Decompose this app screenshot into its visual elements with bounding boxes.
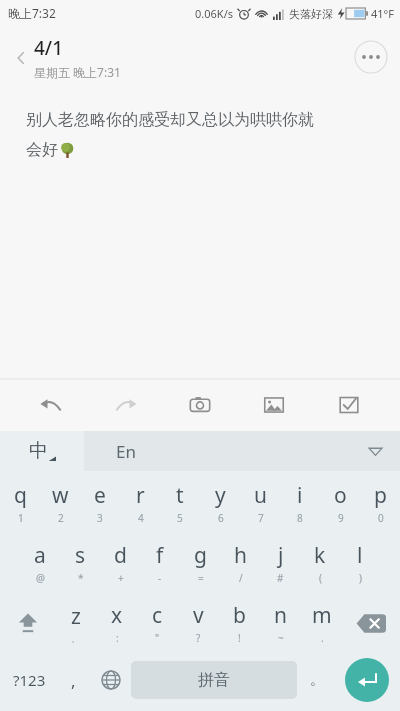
staticText: b [233,601,246,630]
staticText: 会好 [26,140,58,160]
button[interactable]: u [240,477,280,529]
button[interactable]: b [219,597,260,649]
staticText: 4 [138,511,144,525]
staticText: w [52,481,69,510]
staticText: i [297,481,303,510]
staticText: a [34,541,46,570]
staticText: c [152,601,163,630]
button[interactable]: d [100,537,140,589]
button[interactable]: Back [8,45,34,71]
button[interactable]: , [55,655,91,705]
staticText: z [71,602,81,631]
button[interactable]: o [320,477,360,529]
staticText: ) [359,571,362,585]
staticText: t [176,481,184,510]
staticText: / [239,571,243,585]
button[interactable]: Change keyboard language [91,655,131,705]
button[interactable]: x [96,597,137,649]
staticText: e [94,481,106,510]
button[interactable]: t [160,477,200,529]
staticText: 5 [177,511,183,525]
staticText: g [194,541,207,570]
staticText: @ [36,571,45,585]
staticText: 。 [310,671,324,689]
staticText: : [116,631,119,645]
staticText: 2 [58,511,64,525]
staticText: ?123 [13,670,46,690]
staticText: # [277,571,284,585]
button[interactable]: En [84,431,400,471]
button[interactable]: h [220,537,260,589]
staticText: ( [319,571,322,585]
staticText: - [158,571,162,585]
button[interactable]: n [260,597,301,649]
button[interactable]: 拼音 [131,661,297,699]
staticText: r [136,481,145,510]
staticText: 别人老忽略你的感受却又总以为哄哄你就 [26,110,314,130]
staticText: f [156,541,164,570]
staticText: 4/1 [34,35,64,61]
button[interactable]: v [178,597,219,649]
staticText: = [198,571,204,585]
staticText: + [118,571,124,585]
staticText: h [234,541,247,570]
button[interactable]: g [180,537,220,589]
button[interactable]: w [40,477,80,529]
staticText: . [321,631,324,645]
staticText: 、 [71,632,81,645]
staticText: 6 [218,511,224,525]
staticText: * [78,571,84,585]
staticText: u [254,481,267,510]
button[interactable]: a [20,537,60,589]
button[interactable]: Camera [177,382,223,428]
staticText: n [274,601,287,630]
staticText: 星期五 晚上7:31 [34,64,121,80]
staticText: 0.06K/s [195,6,233,21]
staticText: ? [196,631,201,645]
button[interactable]: q [0,477,40,529]
staticText: o [334,481,347,510]
staticText: m [312,601,332,630]
button[interactable]: Checklist [326,382,372,428]
button[interactable]: 。 [297,655,337,705]
button[interactable]: 别人老忽略你的感受却又总以为哄哄你就 [0,88,400,379]
button[interactable]: s [60,537,100,589]
button[interactable]: Enter [337,655,396,705]
staticText: 1 [18,511,24,525]
button[interactable]: m [301,597,342,649]
button[interactable]: Switch input language [0,431,84,471]
staticText: ~ [278,631,284,645]
staticText: d [114,541,127,570]
staticText: s [75,541,86,570]
button[interactable]: i [280,477,320,529]
staticText: 中 [29,439,48,463]
button[interactable]: Backspace [342,597,400,649]
button[interactable]: ?123 [4,655,55,705]
button[interactable]: More options [354,40,388,74]
staticText: j [278,541,284,570]
button[interactable]: z [55,597,96,649]
button[interactable]: Redo [103,382,149,428]
button[interactable]: e [80,477,120,529]
staticText: 晚上7:32 [8,5,56,21]
staticText: , [71,669,76,692]
button[interactable]: Shift [0,597,55,649]
button[interactable]: Insert image [251,382,297,428]
staticText: 7 [258,511,264,525]
staticText: 8 [297,511,303,525]
staticText: 0 [378,511,384,525]
button[interactable]: p [360,477,400,529]
button[interactable]: c [137,597,178,649]
staticText: 拼音 [198,670,230,690]
staticText: v [193,601,204,630]
staticText: q [14,481,27,510]
button[interactable]: j [260,537,300,589]
button[interactable]: y [200,477,240,529]
button[interactable]: f [140,537,180,589]
button[interactable]: Undo [28,382,74,428]
button[interactable]: k [300,537,340,589]
button[interactable]: r [120,477,160,529]
button[interactable]: l [340,537,380,589]
staticText: y [215,481,226,510]
staticText: 3 [97,511,103,525]
